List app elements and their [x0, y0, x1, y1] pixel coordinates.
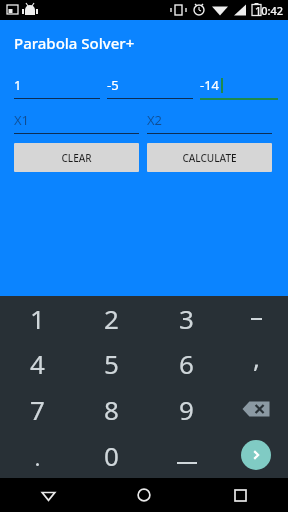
- button[interactable]: CLEAR: [14, 143, 139, 172]
- staticText: 6: [179, 346, 194, 381]
- button[interactable]: CALCULATE: [147, 143, 272, 172]
- button[interactable]: 4: [0, 341, 74, 386]
- button[interactable]: X2: [147, 110, 272, 134]
- staticText: X1: [14, 111, 30, 129]
- button[interactable]: 6: [149, 341, 224, 386]
- staticText: X2: [147, 111, 163, 129]
- button[interactable]: 2: [74, 296, 149, 341]
- staticText: 3: [179, 301, 194, 336]
- button[interactable]: [0, 432, 74, 478]
- button[interactable]: 0: [74, 432, 149, 478]
- staticText: 10:42: [255, 3, 284, 18]
- staticText: 1: [30, 301, 45, 336]
- button[interactable]: Home: [96, 478, 192, 512]
- staticText: 2: [104, 301, 119, 336]
- button[interactable]: 8: [74, 386, 149, 432]
- staticText: 9: [179, 392, 194, 427]
- button[interactable]: 1: [0, 296, 74, 341]
- button[interactable]: [149, 432, 224, 478]
- staticText: 5: [104, 346, 119, 381]
- staticText: -5: [107, 76, 119, 94]
- button[interactable]: -14: [200, 75, 278, 100]
- staticText: ,: [253, 340, 260, 375]
- staticText: CALCULATE: [182, 151, 237, 165]
- button[interactable]: Recents: [192, 478, 288, 512]
- button[interactable]: ,: [224, 341, 288, 386]
- staticText: 7: [30, 392, 45, 427]
- button[interactable]: 1: [14, 75, 100, 99]
- button[interactable]: -5: [107, 75, 193, 99]
- staticText: 8: [104, 392, 119, 427]
- button[interactable]: 7: [0, 386, 74, 432]
- button[interactable]: 5: [74, 341, 149, 386]
- button[interactable]: [224, 296, 288, 341]
- staticText: 0: [104, 438, 119, 473]
- button[interactable]: Enter: [224, 432, 288, 478]
- button[interactable]: 9: [149, 386, 224, 432]
- button[interactable]: Back: [0, 478, 96, 512]
- staticText: 4: [30, 346, 45, 381]
- staticText: 1: [14, 76, 22, 94]
- button[interactable]: Backspace: [224, 386, 288, 432]
- staticText: Parabola Solver+: [14, 33, 135, 53]
- button[interactable]: X1: [14, 110, 139, 134]
- staticText: CLEAR: [61, 151, 92, 165]
- button[interactable]: 3: [149, 296, 224, 341]
- staticText: -14: [200, 76, 220, 94]
